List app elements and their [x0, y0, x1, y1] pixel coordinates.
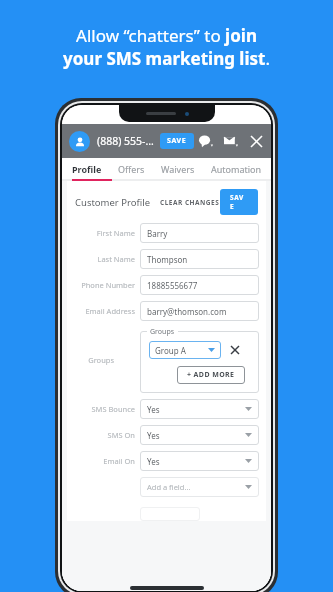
staticText: barry@thomson.com — [147, 306, 227, 317]
staticText: SAVE — [230, 193, 248, 211]
staticText: Waivers — [161, 163, 195, 175]
button[interactable]: Barry — [140, 223, 259, 243]
staticText: Yes — [147, 430, 160, 441]
staticText: Automation — [211, 163, 262, 175]
staticText: (888) 555-... — [97, 134, 154, 148]
staticText: Barry — [147, 228, 168, 239]
staticText: Email On — [103, 456, 135, 466]
button[interactable]: Profile — [72, 163, 118, 175]
button[interactable]: Email — [223, 133, 239, 149]
button[interactable]: Contact — [69, 131, 90, 152]
staticText: SMS On — [107, 430, 135, 440]
button[interactable]: SAVE — [220, 189, 258, 215]
staticText: + ADD MORE — [187, 370, 235, 380]
button[interactable]: Automation — [211, 163, 262, 175]
button[interactable]: CLEAR CHANGES — [160, 198, 220, 207]
staticText: Yes — [147, 456, 160, 467]
button[interactable]: + ADD MORE — [177, 366, 245, 384]
staticText: 18885556677 — [147, 280, 198, 291]
staticText: your SMS marketing list. — [63, 47, 270, 70]
button[interactable]: Yes — [140, 425, 259, 445]
staticText: Last Name — [97, 254, 135, 264]
staticText: Offers — [118, 163, 145, 175]
staticText: SAVE — [167, 136, 187, 146]
staticText: Customer Profile — [75, 196, 150, 209]
button[interactable]: Yes — [140, 451, 259, 471]
staticText: First Name — [96, 228, 135, 238]
staticText: Email Address — [85, 306, 135, 316]
staticText: Yes — [147, 404, 160, 415]
button[interactable]: Waivers — [161, 163, 211, 175]
button[interactable]: Remove group — [229, 344, 241, 356]
staticText: Profile — [72, 163, 102, 175]
staticText: Groups — [88, 355, 114, 365]
staticText: Thompson — [147, 254, 188, 265]
staticText: Group A — [155, 345, 186, 356]
button[interactable]: Yes — [140, 399, 259, 419]
button[interactable]: barry@thomson.com — [140, 301, 259, 321]
staticText: CLEAR CHANGES — [160, 198, 220, 207]
button[interactable]: Messages — [198, 133, 214, 149]
button[interactable]: Offers — [118, 163, 161, 175]
staticText: Allow “chatters” to join — [76, 24, 257, 47]
staticText: Groups — [150, 327, 175, 337]
button[interactable]: SAVE — [160, 133, 194, 149]
staticText: Add a field... — [147, 482, 191, 492]
button[interactable]: Add a field... — [140, 477, 259, 497]
button[interactable]: Close — [248, 133, 264, 149]
staticText: Phone Number — [81, 280, 135, 290]
staticText: SMS Bounce — [91, 404, 135, 414]
button[interactable]: Thompson — [140, 249, 259, 269]
button[interactable]: Group A — [149, 341, 221, 359]
button[interactable]: 18885556677 — [140, 275, 259, 295]
